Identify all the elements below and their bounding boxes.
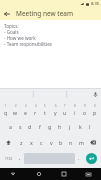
button[interactable]: 5	[40, 102, 50, 118]
staticText: s	[19, 123, 22, 130]
staticText: ,	[19, 155, 21, 162]
button[interactable]: ,	[16, 151, 24, 166]
staticText: t	[44, 109, 46, 116]
button[interactable]: z	[16, 135, 26, 150]
staticText: w	[13, 109, 18, 116]
staticText: Topics:	[4, 23, 19, 29]
staticText: h	[58, 123, 62, 130]
button[interactable]: Shift	[1, 135, 16, 150]
staticText: - How we work	[4, 35, 36, 41]
staticText: 6	[55, 104, 57, 108]
button[interactable]: s	[15, 119, 25, 134]
staticText: 2	[15, 104, 17, 108]
staticText: 4	[35, 104, 37, 108]
button[interactable]: Recents	[51, 168, 76, 180]
staticText: r	[34, 109, 37, 116]
staticText: z	[20, 139, 23, 146]
button[interactable]: n	[66, 135, 76, 150]
button[interactable]: a	[5, 119, 15, 134]
button[interactable]: Hide keyboard	[76, 168, 101, 180]
staticText: e	[24, 109, 27, 116]
button[interactable]: Backspace	[86, 135, 100, 150]
button[interactable]: Back	[0, 7, 13, 20]
staticText: m	[79, 139, 84, 146]
button[interactable]: f	[35, 119, 45, 134]
staticText: - Team responsibilities	[4, 41, 53, 47]
staticText: f	[39, 123, 41, 130]
staticText: x	[30, 139, 33, 146]
button[interactable]: Home	[26, 168, 51, 180]
staticText: y	[54, 109, 57, 116]
staticText: 0	[94, 104, 96, 108]
staticText: u	[63, 109, 67, 116]
button[interactable]: 0	[90, 102, 100, 118]
staticText: j	[69, 123, 71, 130]
button[interactable]: Topics:	[4, 23, 97, 88]
staticText: 1	[5, 104, 7, 108]
staticText: c	[40, 139, 43, 146]
button[interactable]: 4	[30, 102, 40, 118]
staticText: 8	[74, 104, 76, 108]
button[interactable]: Voice input	[89, 88, 101, 100]
button[interactable]: h	[55, 119, 65, 134]
button[interactable]: ?123	[1, 151, 16, 166]
staticText: 7	[64, 104, 66, 108]
button[interactable]: 1	[1, 102, 10, 118]
staticText: k	[79, 123, 82, 130]
button[interactable]: 8	[70, 102, 80, 118]
staticText: 9	[84, 104, 86, 108]
button[interactable]: v	[46, 135, 56, 150]
button[interactable]: j	[65, 119, 75, 134]
staticText: q	[4, 109, 8, 116]
button[interactable]: k	[75, 119, 85, 134]
staticText: .	[78, 155, 80, 162]
staticText: 8:35	[91, 1, 99, 6]
button[interactable]: Enter	[86, 153, 97, 164]
button[interactable]: d	[25, 119, 35, 134]
staticText: d	[28, 123, 32, 130]
button[interactable]: c	[36, 135, 46, 150]
button[interactable]: 3	[20, 102, 30, 118]
staticText: Meeting new team	[16, 9, 74, 18]
staticText: p	[93, 109, 97, 116]
button[interactable]: .	[75, 151, 83, 166]
button[interactable]: 6	[50, 102, 60, 118]
button[interactable]: 2	[10, 102, 20, 118]
staticText: l	[89, 123, 91, 130]
staticText: n	[69, 139, 73, 146]
staticText: ?123	[5, 156, 13, 161]
staticText: i	[74, 109, 76, 116]
button[interactable]: Back	[0, 168, 26, 180]
staticText: v	[50, 139, 53, 146]
button[interactable]: b	[56, 135, 66, 150]
staticText: - Goals	[4, 29, 19, 35]
staticText: 5	[44, 104, 46, 108]
staticText: 3	[25, 104, 27, 108]
button[interactable]: l	[85, 119, 95, 134]
staticText: o	[83, 109, 87, 116]
button[interactable]: 9	[80, 102, 90, 118]
staticText: g	[48, 123, 52, 130]
button[interactable]: g	[45, 119, 55, 134]
button[interactable]: m	[76, 135, 86, 150]
button[interactable]: 7	[60, 102, 70, 118]
staticText: a	[9, 123, 12, 130]
staticText: b	[59, 139, 63, 146]
button[interactable]: x	[26, 135, 36, 150]
